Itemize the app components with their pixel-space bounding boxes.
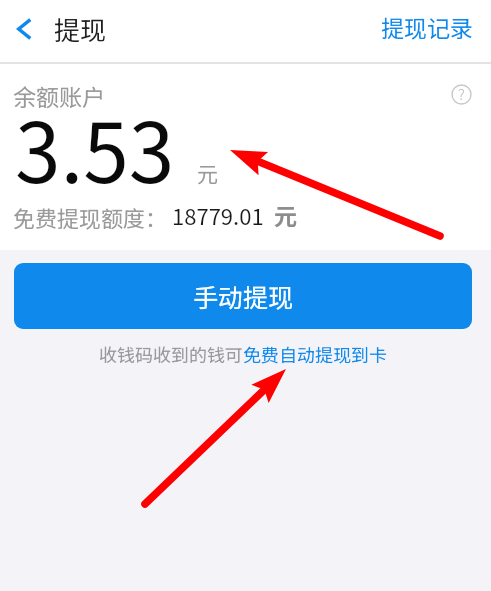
staticText: 提现 (54, 10, 107, 48)
staticText: 免费提现额度： (13, 201, 168, 233)
staticText: 手动提现 (193, 278, 294, 314)
staticText: 元 (274, 198, 297, 231)
button[interactable]: 提现记录 (361, 0, 491, 59)
staticText: 3.53 (15, 88, 175, 207)
button[interactable]: 免费自动提现到卡 (243, 341, 387, 367)
staticText: 余额账户 (13, 79, 105, 112)
staticText: 元 (197, 158, 218, 188)
staticText: ? (458, 83, 465, 104)
button[interactable]: Help (451, 84, 472, 105)
button[interactable]: 手动提现 (14, 263, 472, 329)
button[interactable]: Back (0, 0, 48, 58)
staticText: 免费自动提现到卡 (243, 341, 387, 367)
staticText: 收钱码收到的钱可 (99, 341, 243, 367)
staticText: 提现记录 (381, 10, 473, 43)
staticText: 18779.01 (172, 199, 264, 231)
